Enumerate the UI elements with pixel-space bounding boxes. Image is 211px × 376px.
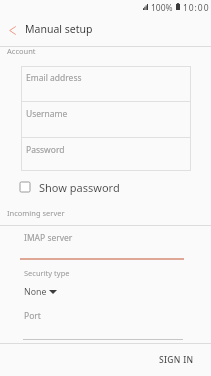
button[interactable]: SIGN IN bbox=[150, 349, 202, 371]
staticText: Email address bbox=[26, 72, 82, 84]
staticText: None bbox=[24, 286, 47, 298]
staticText: Security type bbox=[24, 268, 70, 278]
staticText: Manual setup bbox=[25, 22, 93, 36]
button[interactable]: Show password bbox=[15, 177, 126, 197]
button[interactable]: Username bbox=[21, 102, 191, 137]
staticText: Show password bbox=[39, 180, 120, 195]
button[interactable]: Port bbox=[16, 306, 191, 340]
staticText: Username bbox=[26, 108, 68, 120]
staticText: Account bbox=[7, 46, 36, 56]
staticText: IMAP server bbox=[24, 232, 73, 244]
button[interactable]: Password bbox=[21, 138, 191, 171]
staticText: SIGN IN bbox=[159, 354, 194, 366]
staticText: Port bbox=[24, 310, 41, 322]
staticText: Password bbox=[26, 144, 65, 156]
button[interactable]: Navigate up bbox=[2, 20, 23, 41]
staticText: 100% bbox=[151, 2, 173, 14]
staticText: Incoming server bbox=[7, 208, 65, 218]
button[interactable]: IMAP server bbox=[16, 228, 191, 260]
staticText: 10:00 bbox=[183, 2, 210, 14]
button[interactable]: Security type bbox=[20, 266, 80, 300]
button[interactable]: Email address bbox=[21, 66, 191, 101]
